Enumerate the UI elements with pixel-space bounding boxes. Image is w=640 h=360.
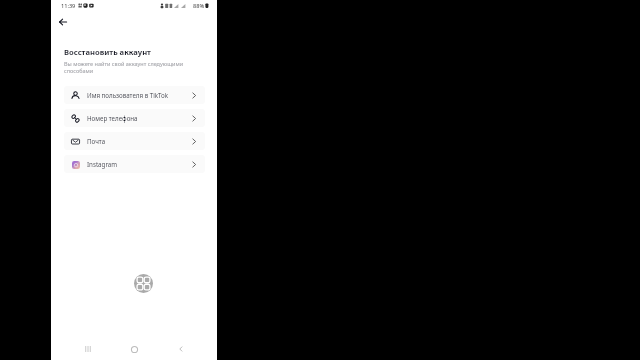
staticText: Восстановить аккаунт — [64, 47, 151, 57]
button[interactable]: Номер телефона — [64, 109, 205, 127]
staticText: Номер телефона — [87, 114, 138, 122]
staticText: 11:39 — [61, 2, 76, 10]
button[interactable]: App grid — [134, 274, 153, 293]
button[interactable]: Home — [126, 341, 142, 357]
staticText: Вы можете найти свой аккаунт следующими … — [64, 60, 184, 74]
staticText: Почта — [87, 137, 106, 145]
staticText: Имя пользователя в TikTok — [87, 91, 169, 99]
button[interactable]: Back — [55, 14, 71, 30]
button[interactable]: Instagram — [64, 155, 205, 173]
staticText: Instagram — [87, 160, 118, 168]
button[interactable]: Recents — [80, 341, 96, 357]
staticText: 88% — [193, 2, 205, 10]
button[interactable]: Почта — [64, 132, 205, 150]
button[interactable]: Имя пользователя в TikTok — [64, 86, 205, 104]
button[interactable]: Back — [173, 341, 189, 357]
